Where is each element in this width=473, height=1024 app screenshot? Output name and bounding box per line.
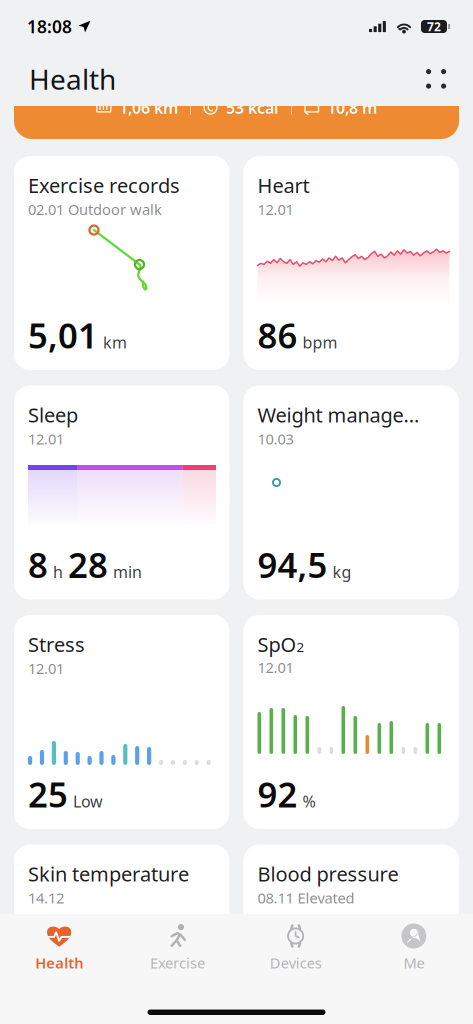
staticText: 5,01 (28, 312, 98, 358)
staticText: 10,8 m (327, 97, 377, 118)
staticText: Stress (28, 631, 85, 658)
staticText: 14.12 (28, 888, 64, 908)
staticText: 28 (68, 541, 108, 587)
button[interactable]: Me (355, 923, 473, 972)
staticText: Devices (270, 953, 322, 972)
staticText: Exercise records (28, 172, 180, 199)
staticText: 8 (28, 541, 48, 587)
staticText: Heart (257, 172, 309, 199)
staticText: km (103, 332, 127, 353)
button[interactable]: Exercise (118, 923, 236, 972)
staticText: 12.01 (257, 200, 293, 219)
staticText: 72 (427, 18, 441, 34)
staticText: 12.01 (28, 429, 64, 449)
staticText: Me (403, 953, 424, 972)
staticText: Exercise (150, 953, 205, 972)
staticText: Sleep (28, 401, 78, 428)
button[interactable]: Health (0, 923, 118, 972)
staticText: 12.01 (257, 658, 293, 677)
staticText: Blood pressure (257, 860, 398, 887)
button[interactable]: Devices (236, 923, 355, 972)
staticText: 86 (257, 312, 297, 358)
staticText: 10.03 (257, 429, 293, 449)
staticText: 94,5 (257, 541, 327, 587)
staticText: bpm (302, 332, 337, 353)
staticText: Health (29, 60, 116, 98)
staticText: 53 kcal (226, 97, 279, 118)
staticText: 2 (296, 638, 304, 656)
staticText: Low (73, 791, 103, 812)
staticText: 92 (257, 771, 297, 817)
staticText: % (302, 791, 315, 812)
staticText: Skin temperature (28, 860, 189, 887)
button[interactable]: More options (416, 59, 457, 99)
staticText: 02.01 Outdoor walk (28, 200, 162, 219)
staticText: 25 (28, 771, 68, 817)
staticText: min (113, 561, 142, 582)
staticText: h (53, 561, 63, 582)
staticText: SpO (257, 631, 296, 658)
staticText: kg (332, 561, 351, 582)
staticText: Weight manage… (257, 401, 419, 428)
staticText: 08.11 Elevated (257, 888, 354, 908)
staticText: Health (35, 953, 83, 972)
staticText: 12.01 (28, 659, 64, 678)
staticText: 1,06 km (119, 97, 178, 118)
staticText: 18:08 (27, 15, 72, 38)
